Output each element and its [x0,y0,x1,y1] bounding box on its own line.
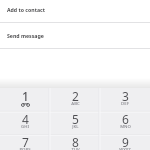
staticText: 8 [72,134,79,150]
staticText: TUV [71,146,80,150]
button[interactable]: Add to contact [0,0,150,22]
staticText: 6 [122,111,129,127]
button[interactable]: 8 [50,134,100,150]
staticText: 7 [22,134,29,150]
button[interactable]: 6 [100,111,150,134]
button[interactable]: Send message [0,23,150,48]
staticText: WXYZ [119,146,131,150]
button[interactable]: 4 [0,111,50,134]
staticText: Add to contact [7,6,45,13]
staticText: DEF [121,100,129,106]
button[interactable]: Voicemail, key 1 [0,88,50,111]
staticText: 2 [72,88,79,104]
button[interactable]: 3 [100,88,150,111]
staticText: Send message [7,32,44,39]
staticText: 5 [72,111,79,127]
staticText: GHI [21,123,29,129]
staticText: 3 [122,88,129,104]
staticText: 4 [22,111,29,127]
staticText: MNO [120,123,131,129]
button[interactable]: 7 [0,134,50,150]
staticText: ABC [71,100,80,106]
button[interactable]: 9 [100,134,150,150]
staticText: 1 [22,88,29,104]
button[interactable]: 2 [50,88,100,111]
staticText: PQRS [19,146,31,150]
staticText: 9 [122,134,129,150]
staticText: JKL [72,123,79,129]
button[interactable]: 5 [50,111,100,134]
